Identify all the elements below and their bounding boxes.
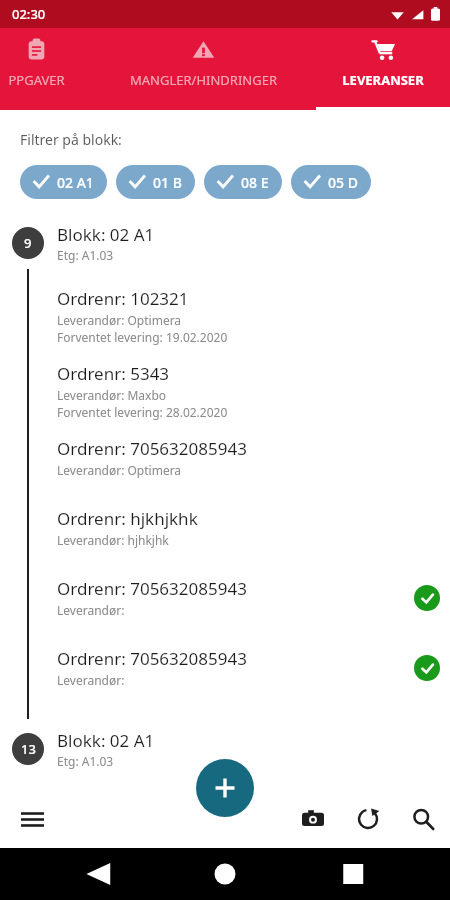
button[interactable]: Ordrenr: 102321: [57, 287, 450, 345]
button[interactable]: Refresh: [351, 802, 385, 836]
staticText: Filtrer på blokk:: [20, 130, 122, 149]
button[interactable]: Search: [406, 802, 440, 836]
staticText: 9: [24, 234, 32, 252]
button[interactable]: 08 E: [204, 165, 282, 199]
staticText: Forventet levering: 28.02.2020: [57, 404, 228, 420]
staticText: Forventet levering: 19.02.2020: [57, 329, 228, 345]
button[interactable]: Ordrenr: 5343: [57, 362, 450, 420]
staticText: 05 D: [328, 173, 358, 192]
button[interactable]: Menu: [14, 801, 50, 837]
staticText: Ordrenr: 102321: [57, 287, 189, 310]
button[interactable]: 05 D: [291, 165, 371, 199]
button[interactable]: LEVERANSER: [316, 28, 450, 110]
staticText: 02 A1: [57, 173, 94, 192]
button[interactable]: Ordrenr: hjkhjkhk: [57, 507, 450, 548]
button[interactable]: MANGLER/HINDRINGER: [103, 28, 303, 110]
staticText: Ordrenr: 5343: [57, 362, 170, 385]
button[interactable]: Camera: [296, 802, 330, 836]
button[interactable]: 02 A1: [20, 165, 107, 199]
button[interactable]: 01 B: [116, 165, 195, 199]
staticText: Ordrenr: 705632085943: [57, 437, 247, 460]
button[interactable]: Ordrenr: 705632085943: [57, 437, 450, 478]
button[interactable]: Ordrenr: 705632085943: [57, 647, 450, 688]
staticText: Leverandør: Optimera: [57, 312, 182, 328]
staticText: 13: [21, 740, 36, 758]
staticText: 01 B: [153, 173, 182, 192]
staticText: Leverandør:: [57, 672, 125, 688]
staticText: Blokk: 02 A1: [57, 729, 155, 752]
staticText: Leverandør: hjhkjhk: [57, 532, 169, 548]
staticText: Leverandør: Optimera: [57, 462, 182, 478]
button[interactable]: 9: [0, 221, 450, 265]
staticText: Ordrenr: 705632085943: [57, 577, 247, 600]
staticText: LEVERANSER: [342, 71, 424, 89]
staticText: PPGAVER: [8, 71, 65, 89]
staticText: Blokk: 02 A1: [57, 223, 155, 246]
button[interactable]: PPGAVER: [0, 28, 111, 110]
staticText: Etg: A1.03: [57, 753, 114, 769]
staticText: 08 E: [241, 173, 269, 192]
staticText: Ordrenr: 705632085943: [57, 647, 247, 670]
staticText: Leverandør:: [57, 602, 125, 618]
button[interactable]: Ordrenr: 705632085943: [57, 577, 450, 618]
staticText: Leverandør: Maxbo: [57, 387, 167, 403]
button[interactable]: Add: [196, 759, 254, 817]
button[interactable]: 13: [0, 727, 450, 771]
staticText: Ordrenr: hjkhjkhk: [57, 507, 198, 530]
staticText: 02:30: [12, 5, 46, 23]
staticText: MANGLER/HINDRINGER: [130, 71, 277, 89]
staticText: Etg: A1.03: [57, 247, 114, 263]
